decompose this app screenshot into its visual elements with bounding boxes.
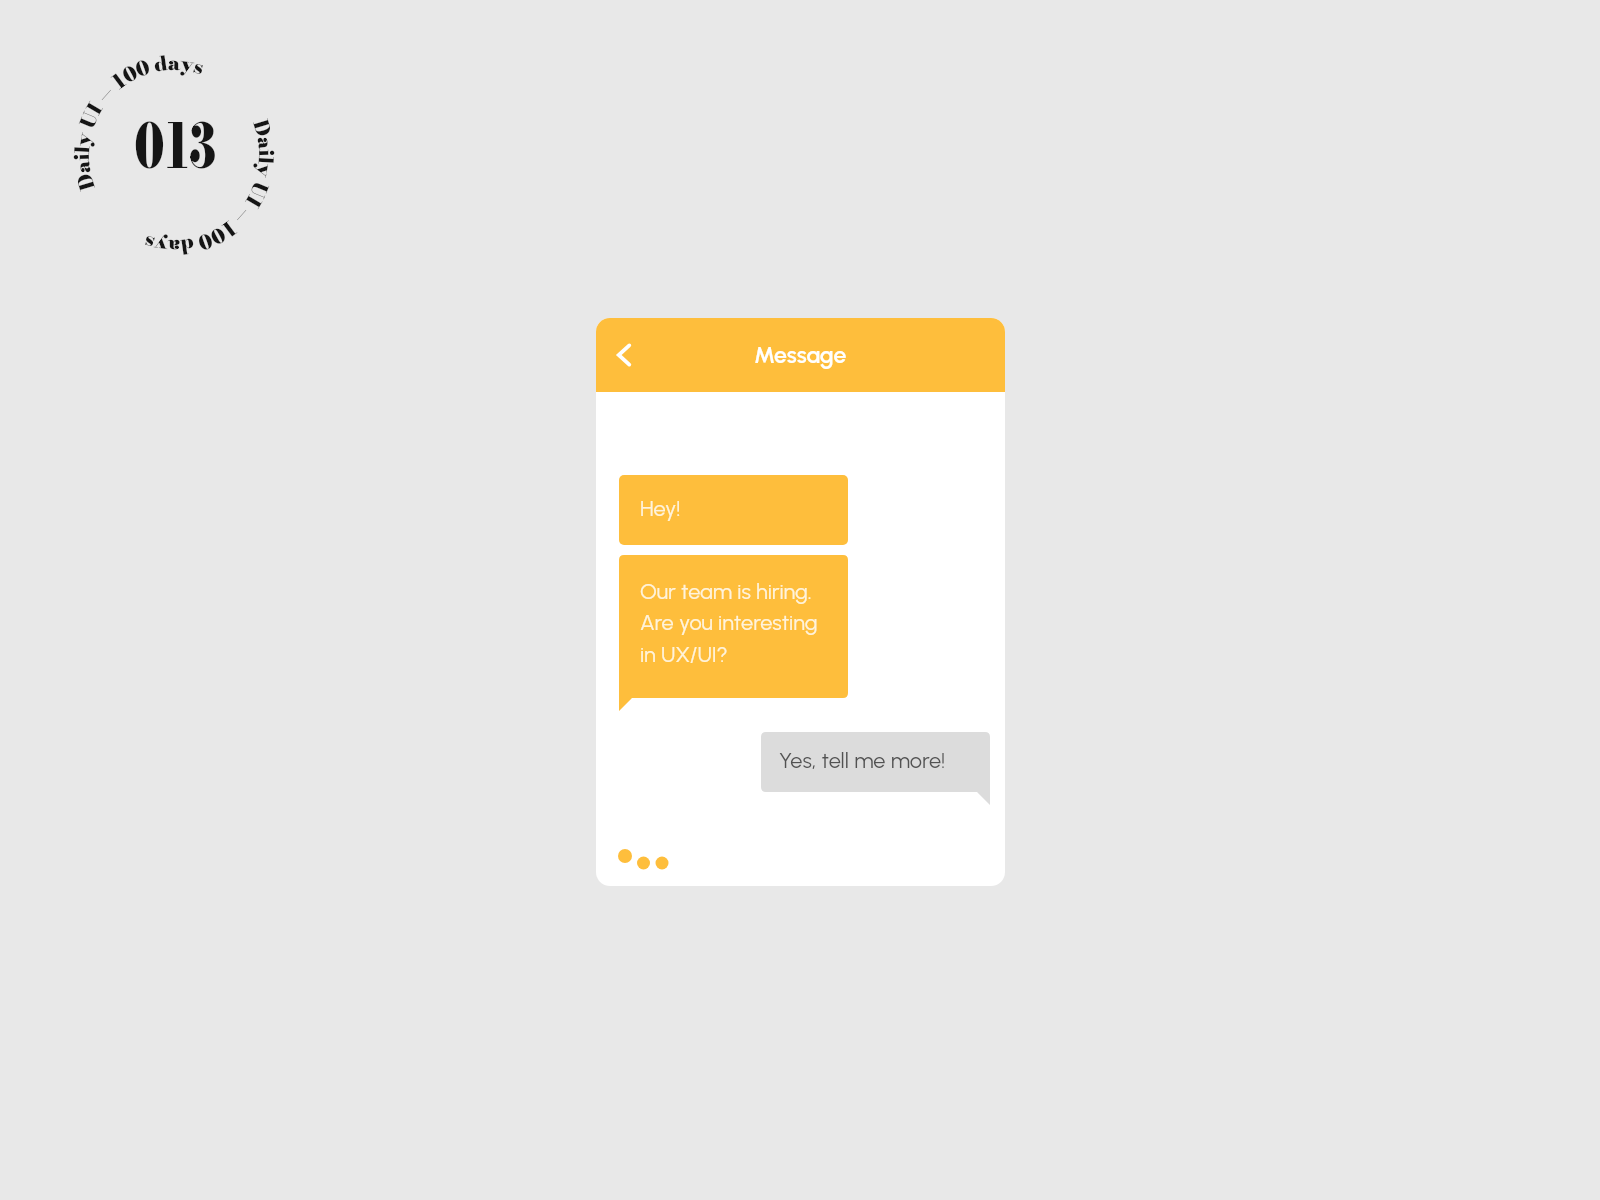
staticText: Hey!: [640, 495, 681, 521]
staticText: Message: [754, 341, 847, 369]
staticText: Our team is hiring. Are you interesting …: [640, 578, 818, 668]
button[interactable]: Our team is hiring. Are you interesting …: [619, 555, 848, 711]
button[interactable]: Typing indicator: [618, 848, 672, 870]
button[interactable]: Hey!: [619, 475, 848, 545]
button[interactable]: Back: [601, 332, 647, 378]
button[interactable]: Yes, tell me more!: [761, 732, 990, 805]
staticText: Yes, tell me more!: [779, 747, 946, 773]
staticText: 013: [134, 99, 217, 193]
